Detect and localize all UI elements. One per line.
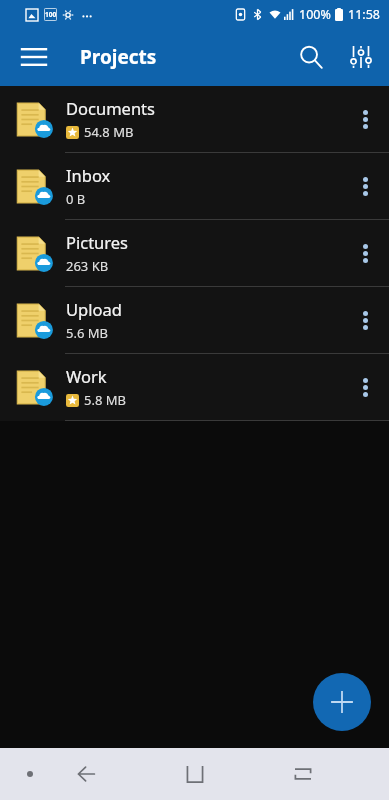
button[interactable]: Pictures (0, 220, 389, 287)
button[interactable]: Documents (0, 86, 389, 153)
button[interactable]: More options (341, 153, 389, 219)
staticText: Pictures (66, 231, 129, 253)
button[interactable]: Back (62, 750, 110, 798)
staticText: 11:58 (348, 6, 380, 23)
staticText: Documents (66, 97, 155, 119)
button[interactable]: More options (341, 354, 389, 420)
staticText: Projects (80, 44, 157, 70)
button[interactable]: More options (341, 86, 389, 152)
staticText: Work (66, 365, 107, 387)
staticText: 0 B (66, 190, 86, 208)
button[interactable]: Filter options (337, 33, 385, 81)
button[interactable]: Add (313, 673, 371, 731)
button[interactable]: Recents (279, 750, 327, 798)
staticText: 5.6 MB (66, 324, 108, 342)
staticText: 54.8 MB (84, 123, 134, 141)
staticText: 100% (299, 6, 331, 23)
button[interactable]: Work (0, 354, 389, 421)
button[interactable]: Search (287, 33, 335, 81)
button[interactable]: Inbox (0, 153, 389, 220)
button[interactable]: Upload (0, 287, 389, 354)
button[interactable]: More options (341, 220, 389, 286)
button[interactable]: Menu (10, 33, 58, 81)
button[interactable]: Home (171, 750, 219, 798)
staticText: 263 KB (66, 257, 109, 275)
staticText: Inbox (66, 164, 111, 186)
button[interactable]: More options (341, 287, 389, 353)
staticText: Upload (66, 298, 122, 320)
button[interactable]: Menu dot (6, 750, 54, 798)
staticText: 5.8 MB (84, 391, 126, 409)
staticText: 100 (45, 10, 57, 19)
